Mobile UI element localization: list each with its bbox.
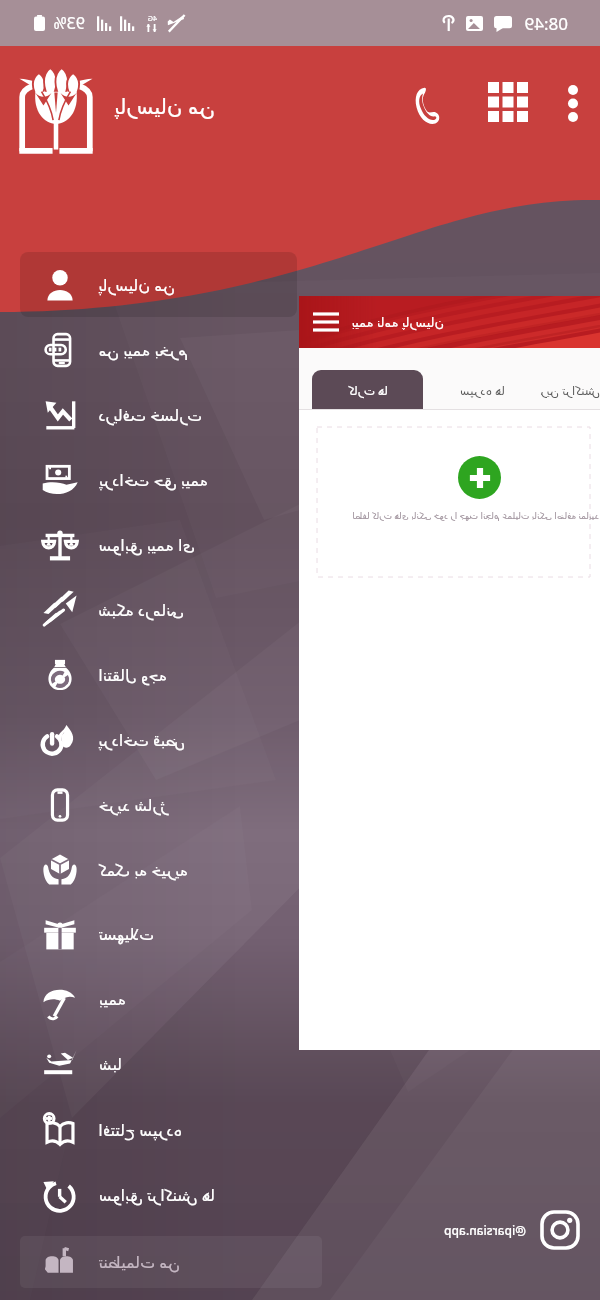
button[interactable]: بیمه xyxy=(0,967,297,1032)
button[interactable]: All services xyxy=(475,69,541,135)
staticText: لطفا کارت های بانکی خود را جهت انجام عمل… xyxy=(352,509,599,521)
staticText: تنظیمات من xyxy=(98,1251,180,1273)
button[interactable]: آخرین تراکنش xyxy=(541,370,600,410)
staticText: تسهیلات xyxy=(98,925,154,944)
staticText: شبکه درمانی xyxy=(98,599,184,621)
button[interactable]: انتقال وجه xyxy=(0,642,297,707)
staticText: آخرین تراکنش xyxy=(541,382,600,398)
staticText: بیمه نامه پارسیان xyxy=(351,313,444,331)
staticText: 08:49 xyxy=(524,12,568,35)
staticText: انتقال وجه xyxy=(98,664,167,686)
staticText: پارسیان من xyxy=(114,92,215,121)
staticText: شبا xyxy=(98,1055,122,1074)
staticText: پارسیان من xyxy=(98,274,175,296)
staticText: 4G xyxy=(147,14,157,24)
staticText: @iparsian.app xyxy=(444,1222,526,1238)
button[interactable]: سپرده ها xyxy=(423,370,541,410)
staticText: افتتاح سپرده xyxy=(98,1119,182,1141)
button[interactable]: سوابق بیمه ای xyxy=(0,512,297,577)
button[interactable]: پارسیان من xyxy=(20,252,297,317)
button[interactable]: Open menu xyxy=(313,309,339,335)
button[interactable]: سوابق تراکنش ها xyxy=(0,1162,297,1227)
button[interactable]: Add card xyxy=(458,456,501,499)
staticText: سپرده ها xyxy=(459,382,505,398)
staticText: من بیمه بخرم xyxy=(98,339,188,361)
staticText: دریافت خسارت xyxy=(98,404,202,426)
button[interactable]: کارت ها xyxy=(312,370,423,410)
staticText: پرداخت حق بیمه xyxy=(98,469,208,491)
button[interactable]: تنظیمات من xyxy=(20,1236,322,1288)
button[interactable]: Call support xyxy=(394,73,460,139)
staticText: سوابق بیمه ای xyxy=(98,534,195,556)
button[interactable]: پرداخت حق بیمه xyxy=(0,447,297,512)
button[interactable]: More options xyxy=(540,70,600,136)
button[interactable]: خرید شارژ xyxy=(0,772,297,837)
staticText: بیمه xyxy=(98,990,126,1009)
button[interactable]: تسهیلات xyxy=(0,902,297,967)
button[interactable]: شبکه درمانی xyxy=(0,577,297,642)
button[interactable]: دریافت خسارت xyxy=(0,382,297,447)
button[interactable]: افتتاح سپرده xyxy=(0,1097,297,1162)
staticText: خرید شارژ xyxy=(98,794,168,816)
staticText: 93% xyxy=(53,12,85,34)
button[interactable]: شبا xyxy=(0,1032,297,1097)
staticText: کمک به خیریه xyxy=(98,859,188,881)
staticText: کارت ها xyxy=(348,382,388,398)
button[interactable]: پرداخت قبض xyxy=(0,707,297,772)
button[interactable]: من بیمه بخرم xyxy=(0,317,297,382)
staticText: پرداخت قبض xyxy=(98,729,185,751)
button[interactable]: کمک به خیریه xyxy=(0,837,297,902)
staticText: سوابق تراکنش ها xyxy=(98,1184,215,1206)
